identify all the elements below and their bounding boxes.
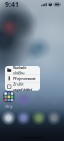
staticText: Hry [5,103,12,109]
button[interactable]: Folder [3,91,14,109]
button[interactable]: Rozbalit složku [5,66,40,74]
staticText: Rozbalit složku [13,65,26,75]
button[interactable]: Zrušit uspořádání [5,83,40,91]
staticText: Zrušit uspořádání [13,81,32,92]
staticText: Přejmenovat [13,76,35,81]
button[interactable]: Přejmenovat [5,74,40,82]
staticText: 9:41 [5,0,19,9]
